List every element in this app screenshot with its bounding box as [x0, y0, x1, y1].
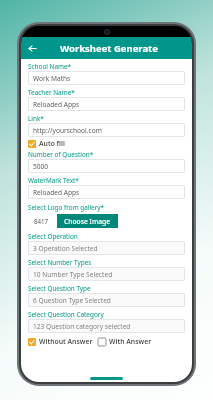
button[interactable]: Reloaded Apps: [28, 97, 185, 111]
staticText: Choose Image: [64, 217, 111, 226]
staticText: Auto fill: [39, 139, 65, 148]
button[interactable]: Auto fill: [28, 139, 65, 148]
staticText: 3 Operation Selected: [33, 244, 98, 253]
staticText: Reloaded Apps: [33, 100, 80, 109]
staticText: 6 Question Type Selected: [33, 296, 111, 305]
staticText: http://yourschool.com: [33, 126, 102, 135]
button[interactable]: Back: [21, 37, 43, 59]
button[interactable]: 10 Number Type Selected: [28, 267, 185, 281]
button[interactable]: Work Maths: [28, 71, 185, 85]
staticText: WaterMark Text*: [28, 176, 79, 185]
staticText: Teacher Name*: [28, 88, 75, 97]
staticText: 5000: [33, 162, 49, 171]
staticText: Without Answer: [39, 337, 93, 346]
staticText: 8417: [34, 217, 49, 225]
staticText: Select Number Types: [28, 258, 92, 267]
button[interactable]: 123 Question category selected: [28, 319, 185, 333]
staticText: Number of Question*: [28, 150, 94, 159]
staticText: Select Question Type: [28, 284, 91, 293]
button[interactable]: Without Answer: [28, 337, 93, 346]
staticText: Work Maths: [33, 74, 71, 83]
button[interactable]: 5000: [28, 159, 185, 173]
staticText: Select Logo from gallery*: [28, 203, 105, 212]
button[interactable]: Reloaded Apps: [28, 185, 185, 199]
staticText: Link*: [28, 114, 44, 123]
staticText: Select Question Category: [28, 310, 104, 319]
staticText: Reloaded Apps: [33, 188, 80, 197]
staticText: 123 Question category selected: [33, 322, 131, 331]
staticText: 10 Number Type Selected: [33, 270, 113, 279]
button[interactable]: With Answer: [98, 337, 152, 346]
button[interactable]: Choose Image: [57, 214, 118, 228]
staticText: Worksheet Generate: [60, 42, 158, 55]
button[interactable]: 3 Operation Selected: [28, 241, 185, 255]
staticText: Select Operation: [28, 232, 78, 241]
button[interactable]: http://yourschool.com: [28, 123, 185, 137]
button[interactable]: 6 Question Type Selected: [28, 293, 185, 307]
staticText: With Answer: [109, 337, 152, 346]
staticText: School Name*: [28, 62, 72, 71]
